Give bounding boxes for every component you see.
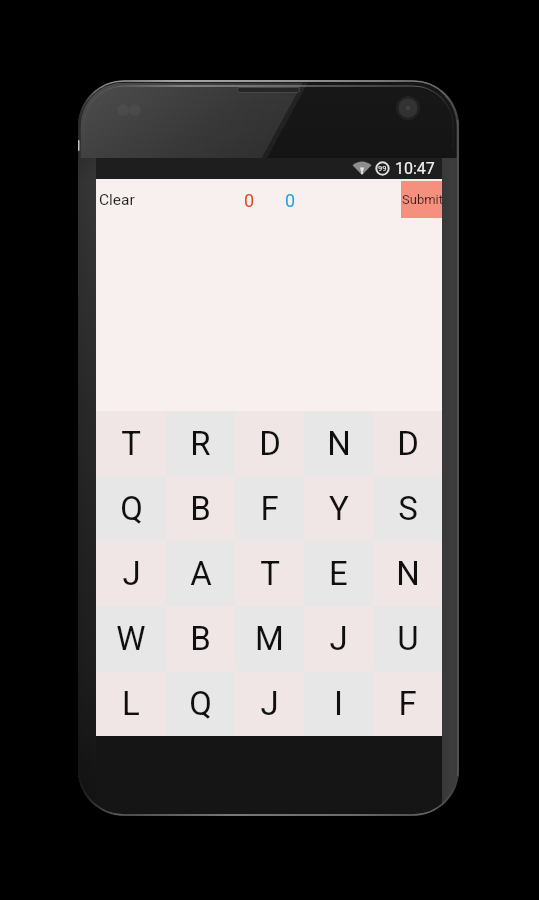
- button[interactable]: Q: [96, 476, 166, 541]
- button[interactable]: Clear: [96, 179, 242, 221]
- button[interactable]: F: [235, 476, 304, 541]
- staticText: T: [260, 554, 280, 593]
- staticText: Clear: [99, 191, 135, 209]
- staticText: N: [396, 554, 420, 593]
- button[interactable]: I: [304, 671, 373, 736]
- button[interactable]: J: [235, 671, 304, 736]
- staticText: Q: [120, 489, 143, 528]
- staticText: D: [259, 424, 281, 463]
- button[interactable]: U: [373, 606, 442, 671]
- staticText: 0: [285, 190, 296, 211]
- staticText: E: [329, 554, 348, 593]
- staticText: Y: [329, 489, 349, 528]
- staticText: 10:47: [395, 159, 435, 178]
- staticText: Submit: [402, 192, 442, 207]
- button[interactable]: Q: [166, 671, 235, 736]
- button[interactable]: B: [166, 476, 235, 541]
- staticText: A: [190, 554, 212, 593]
- button[interactable]: E: [304, 541, 373, 606]
- button[interactable]: N: [304, 411, 373, 476]
- staticText: F: [398, 684, 417, 723]
- staticText: B: [190, 489, 211, 528]
- button[interactable]: M: [235, 606, 304, 671]
- button[interactable]: B: [166, 606, 235, 671]
- button[interactable]: J: [96, 541, 166, 606]
- staticText: F: [260, 489, 279, 528]
- staticText: 99: [378, 164, 387, 173]
- button[interactable]: W: [96, 606, 166, 671]
- staticText: S: [398, 489, 418, 528]
- staticText: B: [190, 619, 211, 658]
- staticText: D: [397, 424, 419, 463]
- button[interactable]: L: [96, 671, 166, 736]
- staticText: W: [116, 619, 146, 658]
- button[interactable]: Y: [304, 476, 373, 541]
- button[interactable]: N: [373, 541, 442, 606]
- staticText: J: [260, 684, 279, 723]
- other: Wi-Fi: [352, 161, 372, 176]
- button[interactable]: T: [96, 411, 166, 476]
- staticText: J: [329, 619, 348, 658]
- button[interactable]: T: [235, 541, 304, 606]
- button[interactable]: D: [235, 411, 304, 476]
- button[interactable]: A: [166, 541, 235, 606]
- button[interactable]: F: [373, 671, 442, 736]
- staticText: J: [122, 554, 141, 593]
- staticText: M: [255, 619, 284, 658]
- staticText: Q: [189, 684, 212, 723]
- staticText: L: [122, 684, 140, 723]
- button[interactable]: D: [373, 411, 442, 476]
- staticText: U: [397, 619, 419, 658]
- staticText: R: [190, 424, 211, 463]
- staticText: 0: [244, 190, 255, 211]
- button[interactable]: S: [373, 476, 442, 541]
- staticText: I: [334, 684, 343, 723]
- staticText: T: [121, 424, 141, 463]
- staticText: N: [327, 424, 351, 463]
- button[interactable]: Submit: [401, 181, 442, 218]
- button[interactable]: J: [304, 606, 373, 671]
- button[interactable]: R: [166, 411, 235, 476]
